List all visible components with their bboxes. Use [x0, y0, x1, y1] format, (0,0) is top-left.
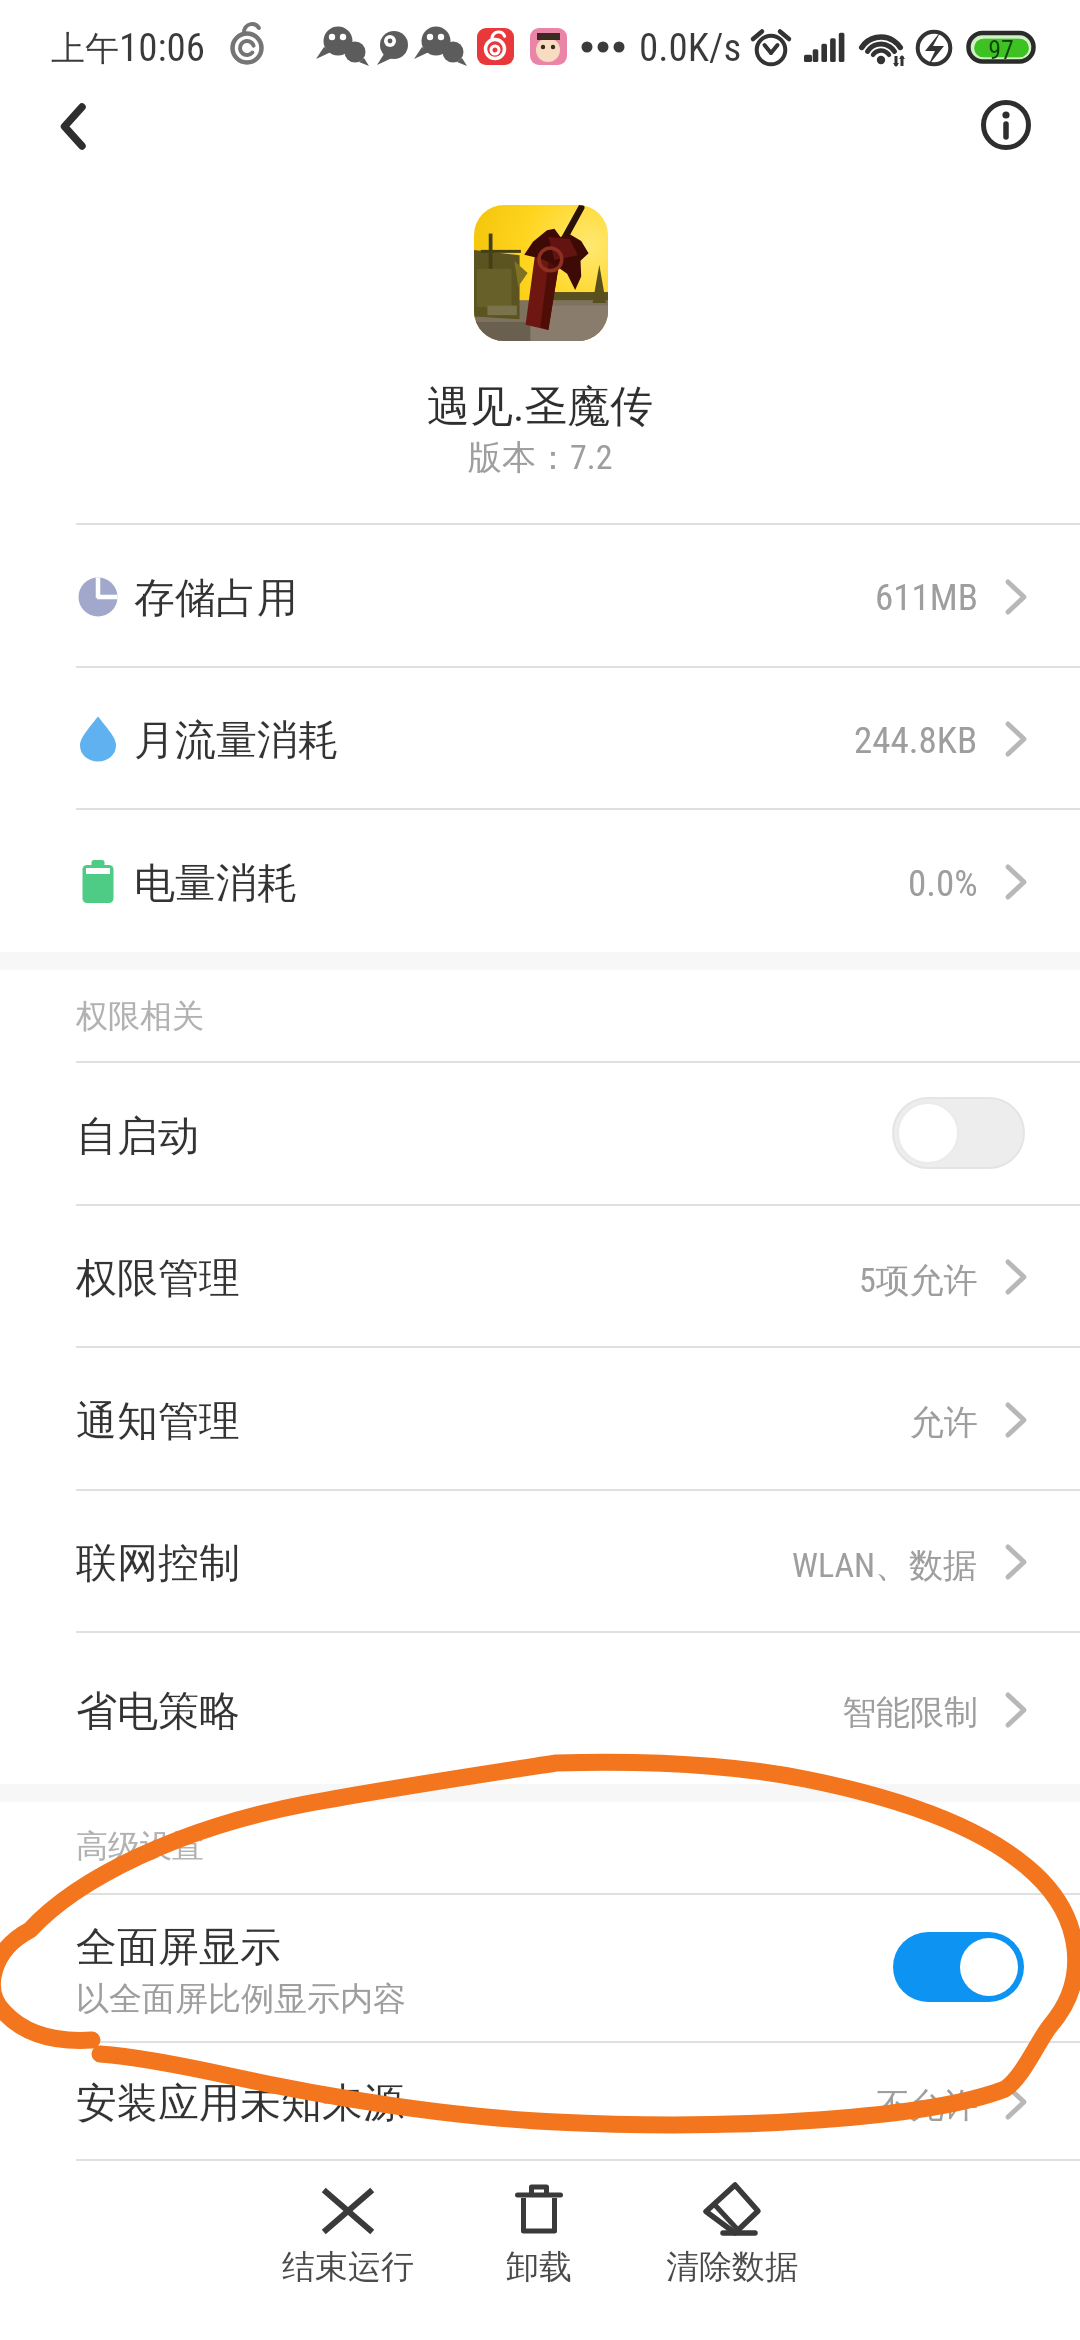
- staticText: 省电策略: [76, 1686, 240, 1738]
- staticText: WLAN、数据: [792, 1544, 978, 1587]
- staticText: 611MB: [875, 576, 978, 619]
- staticText: 清除数据: [666, 2246, 798, 2288]
- button[interactable]: 省电策略: [0, 1631, 1080, 1784]
- button[interactable]: 卸载: [429, 2178, 649, 2318]
- button[interactable]: Back: [27, 87, 105, 165]
- staticText: 244.8KB: [854, 719, 978, 762]
- button[interactable]: App details: [967, 86, 1045, 164]
- button[interactable]: 自启动: [0, 1061, 1080, 1204]
- staticText: 10:06: [119, 25, 206, 71]
- staticText: 高级设置: [76, 1826, 204, 1866]
- staticText: 版本：7.2: [468, 436, 613, 479]
- staticText: 全面屏显示: [76, 1922, 281, 1974]
- staticText: 通知管理: [76, 1396, 240, 1448]
- staticText: 不允许: [876, 2084, 978, 2127]
- button[interactable]: 安装应用未知来源: [0, 2041, 1080, 2159]
- button[interactable]: 结束运行: [238, 2178, 458, 2318]
- staticText: 遇见.圣魔传: [427, 380, 654, 434]
- button[interactable]: 月流量消耗: [0, 666, 1080, 808]
- staticText: 自启动: [76, 1111, 199, 1163]
- staticText: 智能限制: [842, 1691, 978, 1734]
- button[interactable]: 全面屏显示: [893, 1932, 1024, 2002]
- button[interactable]: 全面屏显示: [0, 1893, 1080, 2041]
- button[interactable]: 存储占用: [0, 523, 1080, 666]
- staticText: 5项允许: [859, 1259, 978, 1302]
- button[interactable]: 权限管理: [0, 1204, 1080, 1346]
- staticText: 安装应用未知来源: [76, 2078, 404, 2130]
- staticText: 权限相关: [76, 996, 204, 1036]
- staticText: 0.0%: [908, 862, 978, 905]
- staticText: 月流量消耗: [134, 715, 339, 767]
- button[interactable]: 自启动: [893, 1098, 1024, 1168]
- staticText: 上午: [51, 27, 119, 70]
- staticText: 联网控制: [76, 1538, 240, 1590]
- button[interactable]: 通知管理: [0, 1346, 1080, 1489]
- staticText: 以全面屏比例显示内容: [76, 1978, 406, 2020]
- button[interactable]: 清除数据: [622, 2178, 842, 2318]
- staticText: 卸载: [506, 2246, 572, 2288]
- staticText: 存储占用: [134, 573, 298, 625]
- staticText: 0.0K/s: [639, 25, 742, 71]
- button[interactable]: 联网控制: [0, 1489, 1080, 1631]
- staticText: 允许: [910, 1401, 978, 1444]
- staticText: 结束运行: [282, 2246, 414, 2288]
- staticText: 97: [968, 35, 1034, 65]
- staticText: 权限管理: [76, 1253, 240, 1305]
- staticText: 电量消耗: [134, 858, 298, 910]
- button[interactable]: 电量消耗: [0, 808, 1080, 952]
